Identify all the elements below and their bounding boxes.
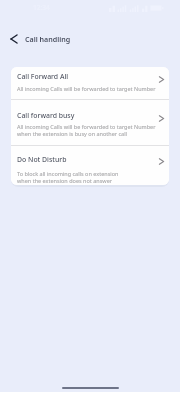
staticText: when the extension is busy on another ca… [17,130,128,137]
button[interactable]: Call forward busy [11,100,169,145]
button[interactable]: Back [5,30,23,48]
button[interactable]: Do Not Disturb [11,146,169,185]
staticText: All incoming Calls will be forwarded to … [17,123,156,130]
staticText: Call forward busy [17,111,75,120]
staticText: Do Not Disturb [17,155,67,164]
staticText: Call Forward All [17,72,69,81]
staticText: when the extension does not answer [17,177,113,184]
staticText: All incoming Calls will be forwarded to … [17,85,156,92]
staticText: To block all incoming calls on extension [17,170,119,177]
button[interactable]: Call Forward All [11,67,169,99]
staticText: Call handling [25,34,71,44]
